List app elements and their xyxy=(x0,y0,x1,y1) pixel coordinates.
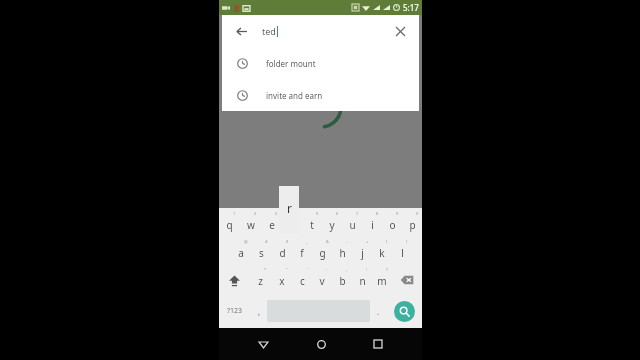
button[interactable]: ! xyxy=(352,266,372,294)
button[interactable]: @ xyxy=(230,238,251,266)
staticText: $ xyxy=(286,239,289,244)
staticText: ?123 xyxy=(227,306,243,316)
staticText: s xyxy=(259,246,264,260)
staticText: 1 xyxy=(233,211,236,216)
button[interactable]: 2 xyxy=(240,210,261,238)
button[interactable]: ?123 xyxy=(219,294,251,328)
button[interactable]: # xyxy=(251,238,272,266)
button[interactable]: 6 xyxy=(322,210,342,238)
staticText: # xyxy=(265,239,268,244)
staticText: 6 xyxy=(336,211,339,216)
staticText: ' xyxy=(307,267,308,272)
button[interactable]: 9 xyxy=(382,210,402,238)
button[interactable]: ( xyxy=(372,238,392,266)
button[interactable]: * xyxy=(250,266,271,294)
staticText: b xyxy=(339,274,346,288)
staticText: * xyxy=(264,267,267,272)
button[interactable]: 1 xyxy=(219,210,240,238)
staticText: a xyxy=(238,246,244,260)
button[interactable]: Search xyxy=(394,301,415,322)
button[interactable]: , xyxy=(251,294,267,328)
button[interactable]: 8 xyxy=(362,210,382,238)
staticText: o xyxy=(389,218,396,232)
button[interactable]: 3 xyxy=(261,210,282,238)
button[interactable]: : xyxy=(312,266,332,294)
staticText: x xyxy=(279,274,285,288)
staticText: d xyxy=(279,246,286,260)
staticText: ted xyxy=(262,25,276,37)
staticText: m xyxy=(377,274,387,288)
button[interactable]: Clear xyxy=(391,22,409,40)
staticText: " xyxy=(286,267,288,272)
button[interactable]: ; xyxy=(332,266,352,294)
button[interactable]: 4 xyxy=(282,210,302,238)
staticText: c xyxy=(300,274,305,288)
staticText: r xyxy=(287,200,292,216)
staticText: u xyxy=(349,218,356,232)
staticText: p xyxy=(409,218,416,232)
staticText: ? xyxy=(386,267,388,272)
button[interactable]: ' xyxy=(292,266,312,294)
button[interactable]: & xyxy=(312,238,332,266)
staticText: f xyxy=(300,246,304,260)
button[interactable]: 0 xyxy=(402,210,422,238)
staticText: 8 xyxy=(376,211,379,216)
staticText: 3 xyxy=(275,211,278,216)
staticText: w xyxy=(247,218,255,232)
staticText: 2 xyxy=(254,211,257,216)
button[interactable]: Back xyxy=(249,330,277,358)
staticText: : xyxy=(326,267,328,272)
staticText: 5 xyxy=(316,211,319,216)
button[interactable]: _ xyxy=(292,238,312,266)
staticText: g xyxy=(319,246,326,260)
button[interactable]: " xyxy=(271,266,292,294)
staticText: e xyxy=(269,218,275,232)
staticText: y xyxy=(329,218,335,232)
staticText: invite and earn xyxy=(266,90,323,101)
staticText: 7 xyxy=(356,211,359,216)
staticText: ! xyxy=(366,267,368,272)
staticText: 5:17 xyxy=(403,2,419,13)
staticText: t xyxy=(310,218,314,232)
staticText: v xyxy=(319,274,325,288)
button[interactable]: + xyxy=(352,238,372,266)
staticText: k xyxy=(379,246,385,260)
staticText: i xyxy=(371,218,374,232)
button[interactable]: ) xyxy=(392,238,412,266)
staticText: . xyxy=(377,306,380,317)
staticText: - xyxy=(346,239,348,244)
staticText: folder mount xyxy=(266,58,316,69)
button[interactable]: Recents xyxy=(364,330,392,358)
staticText: h xyxy=(339,246,346,260)
staticText: l xyxy=(401,246,404,260)
staticText: ; xyxy=(346,267,348,272)
button[interactable]: . xyxy=(370,294,386,328)
button[interactable]: 7 xyxy=(342,210,362,238)
button[interactable]: $ xyxy=(272,238,292,266)
button[interactable]: invite and earn xyxy=(222,79,419,111)
button[interactable]: 5 xyxy=(302,210,322,238)
staticText: + xyxy=(366,239,369,244)
staticText: ) xyxy=(406,239,408,244)
staticText: @ xyxy=(244,239,248,244)
button[interactable]: Backspace xyxy=(392,266,422,294)
button[interactable]: - xyxy=(332,238,352,266)
staticText: j xyxy=(361,246,364,260)
staticText: ( xyxy=(386,239,388,244)
staticText: , xyxy=(258,306,261,317)
staticText: _ xyxy=(306,239,308,244)
staticText: z xyxy=(258,274,263,288)
button[interactable]: folder mount xyxy=(222,47,419,79)
button[interactable]: Shift xyxy=(219,266,250,294)
staticText: 0 xyxy=(416,211,419,216)
staticText: q xyxy=(226,218,233,232)
staticText: 9 xyxy=(396,211,399,216)
button[interactable]: ? xyxy=(372,266,392,294)
button[interactable]: Back xyxy=(222,15,419,47)
staticText: & xyxy=(326,239,329,244)
button[interactable]: Home xyxy=(307,330,335,358)
button[interactable]: Back xyxy=(232,22,250,40)
